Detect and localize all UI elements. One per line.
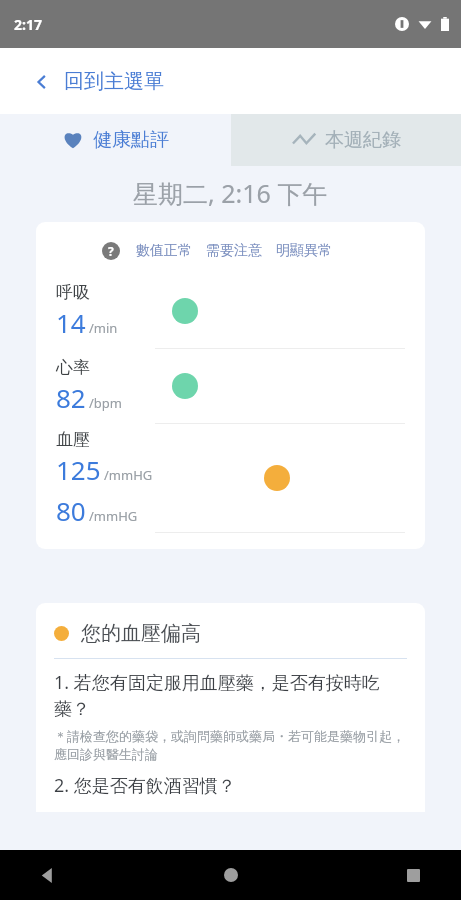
staticText: ? (108, 243, 114, 259)
button[interactable]: Home (209, 853, 253, 897)
staticText: 80 (56, 493, 86, 528)
staticText: 血壓 (56, 429, 90, 450)
staticText: /mmHG (104, 466, 153, 484)
staticText: /mmHG (89, 507, 138, 525)
staticText: 星期二, 2:16 下午 (133, 176, 328, 210)
button[interactable]: Back (26, 853, 70, 897)
staticText: 心率 (56, 357, 90, 378)
staticText: 2. 您是否有飲酒習慣？ (54, 773, 236, 798)
staticText: /min (89, 319, 118, 337)
staticText: 您的血壓偏高 (81, 621, 201, 646)
button[interactable]: Recent apps (391, 853, 435, 897)
staticText: 健康點評 (93, 128, 169, 152)
staticText: 需要注意 (206, 242, 262, 260)
staticText: 數值正常 (136, 242, 192, 260)
staticText: 82 (56, 380, 86, 415)
staticText: 14 (56, 305, 86, 340)
staticText: ＊請檢查您的藥袋，或詢問藥師或藥局・若可能是藥物引起，應回診與醫生討論 (54, 728, 407, 763)
button[interactable]: 回到主選單 (26, 63, 172, 100)
button[interactable]: 說明 (102, 242, 120, 260)
staticText: 1. 若您有固定服用血壓藥，是否有按時吃藥？ (54, 670, 407, 721)
staticText: 2:17 (14, 15, 42, 34)
staticText: 回到主選單 (64, 69, 164, 94)
staticText: 125 (56, 452, 101, 487)
button[interactable]: 本週紀錄 (231, 114, 461, 166)
staticText: 呼吸 (56, 282, 90, 303)
button[interactable]: 健康點評 (0, 114, 231, 166)
staticText: /bpm (89, 394, 122, 412)
staticText: 本週紀錄 (325, 128, 401, 152)
staticText: 明顯異常 (276, 242, 332, 260)
